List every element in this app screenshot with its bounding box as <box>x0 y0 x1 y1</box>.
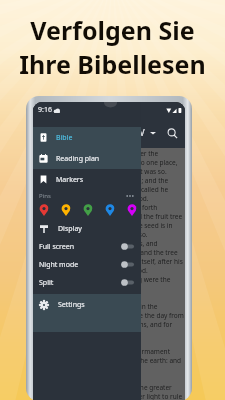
button[interactable]: Full screen <box>33 237 141 256</box>
staticText: of the heaven to give light upon the ear… <box>39 356 182 365</box>
staticText: And God called the dry land Earth; and t… <box>39 176 169 185</box>
staticText: Bible <box>56 133 73 143</box>
staticText: Settings <box>58 300 85 310</box>
staticText: Night mode <box>39 260 79 270</box>
button[interactable]: Search <box>167 128 178 139</box>
staticText: And let them be for lights in the firmam… <box>39 347 170 356</box>
staticText: kind: and God saw that it was good. <box>39 266 148 275</box>
staticText: 9:16 <box>38 105 52 115</box>
staticText: Display <box>58 224 82 234</box>
staticText: and let the dry land appear: and it was … <box>39 167 167 176</box>
staticText: Seas: and God saw that it was good. <box>39 194 149 203</box>
button[interactable]: Pin <box>127 204 137 216</box>
staticText: Reading plan <box>56 154 100 164</box>
staticText: yielding fruit after his kind, whose see… <box>39 221 173 230</box>
staticText: Ihre Bibellesen <box>19 47 206 81</box>
staticText: third day. <box>39 284 68 293</box>
staticText: yielding fruit, whose seed was in itself… <box>39 257 183 266</box>
button[interactable]: Settings <box>33 294 141 315</box>
button[interactable]: Pin <box>39 204 49 216</box>
button[interactable]: Pin <box>83 204 93 216</box>
button[interactable]: Reading plan <box>33 148 141 169</box>
button[interactable]: More options <box>125 193 135 199</box>
button[interactable]: Night mode <box>33 255 141 274</box>
button[interactable]: Markers <box>33 169 141 190</box>
button[interactable]: Display <box>33 218 141 240</box>
staticText: light to rule the day, and the lesser li… <box>39 392 183 400</box>
staticText: KJV <box>132 127 145 139</box>
staticText: seasons, and for days, and years: <box>39 329 140 338</box>
button[interactable]: Bible <box>33 127 141 148</box>
staticText: herb yielding seed after his kind, and t… <box>39 248 178 257</box>
staticText: And God made two great lights; the great… <box>39 383 172 392</box>
staticText: firmament of the heaven to divide the da… <box>39 311 184 320</box>
staticText: And the evening and the morning were the <box>39 275 171 284</box>
staticText: the night; and let them be for signs, an… <box>39 320 173 329</box>
staticText: And God said, Let the waters under the <box>39 149 159 158</box>
button[interactable]: Pin <box>61 204 71 216</box>
staticText: Pins <box>39 192 51 200</box>
staticText: And God said, Let there be lights in the <box>39 302 158 311</box>
staticText: Split <box>39 278 54 288</box>
staticText: Full screen <box>39 242 75 252</box>
button[interactable]: Split <box>33 273 141 292</box>
staticText: itself, upon the earth: and it was so. <box>39 230 148 239</box>
staticText: gathering together of the waters called … <box>39 185 169 194</box>
staticText: grass, the herb yielding seed, and the f… <box>39 212 183 221</box>
staticText: And the earth brought forth grass, and <box>39 239 158 248</box>
button[interactable]: Pin <box>105 204 115 216</box>
staticText: Markers <box>56 175 84 185</box>
staticText: Verfolgen Sie <box>30 13 195 47</box>
staticText: And God said, Let the earth bring forth <box>39 203 158 212</box>
staticText: heaven be gathered together unto one pla… <box>39 158 178 167</box>
